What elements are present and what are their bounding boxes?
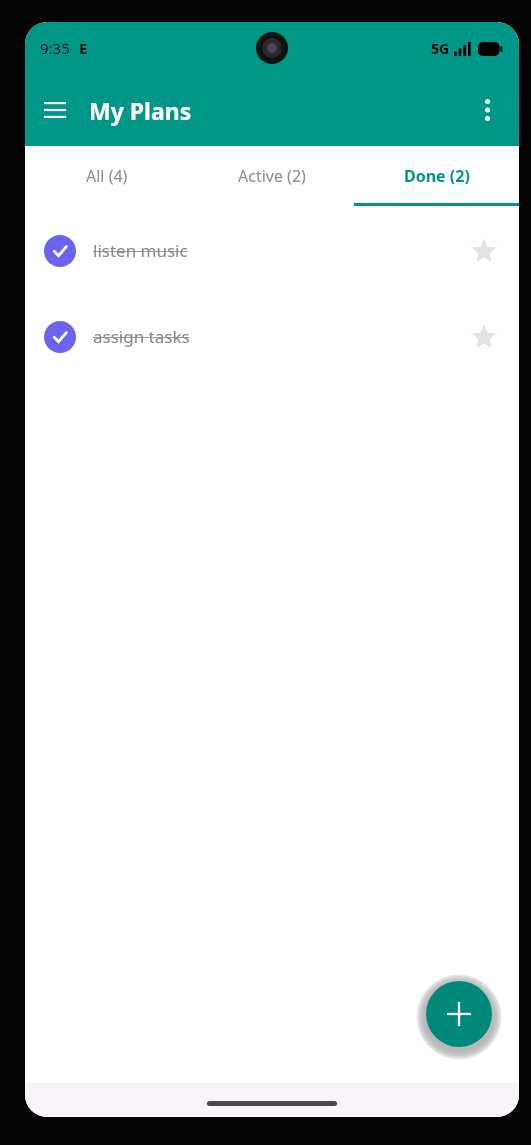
- button[interactable]: All (4): [25, 146, 189, 206]
- button[interactable]: Mark task incomplete: [44, 235, 76, 267]
- staticText: All (4): [86, 165, 128, 187]
- button[interactable]: Mark task incomplete: [29, 301, 515, 372]
- staticText: assign tasks: [93, 325, 190, 348]
- button[interactable]: Done (2): [354, 146, 519, 206]
- staticText: listen music: [93, 239, 188, 262]
- staticText: Active (2): [238, 165, 306, 187]
- button[interactable]: Mark task incomplete: [44, 321, 76, 353]
- staticText: 9:35: [40, 38, 70, 58]
- button[interactable]: Mark task incomplete: [29, 215, 515, 286]
- button[interactable]: Toggle favourite: [462, 229, 506, 273]
- button[interactable]: Toggle favourite: [462, 315, 506, 359]
- button[interactable]: Open navigation menu: [31, 86, 79, 134]
- staticText: 5G: [431, 39, 450, 58]
- staticText: E: [79, 38, 88, 58]
- button[interactable]: More options: [463, 86, 511, 134]
- button[interactable]: Add new plan: [426, 981, 492, 1047]
- button[interactable]: Active (2): [189, 146, 354, 206]
- staticText: My Plans: [89, 95, 192, 126]
- staticText: Done (2): [404, 165, 470, 187]
